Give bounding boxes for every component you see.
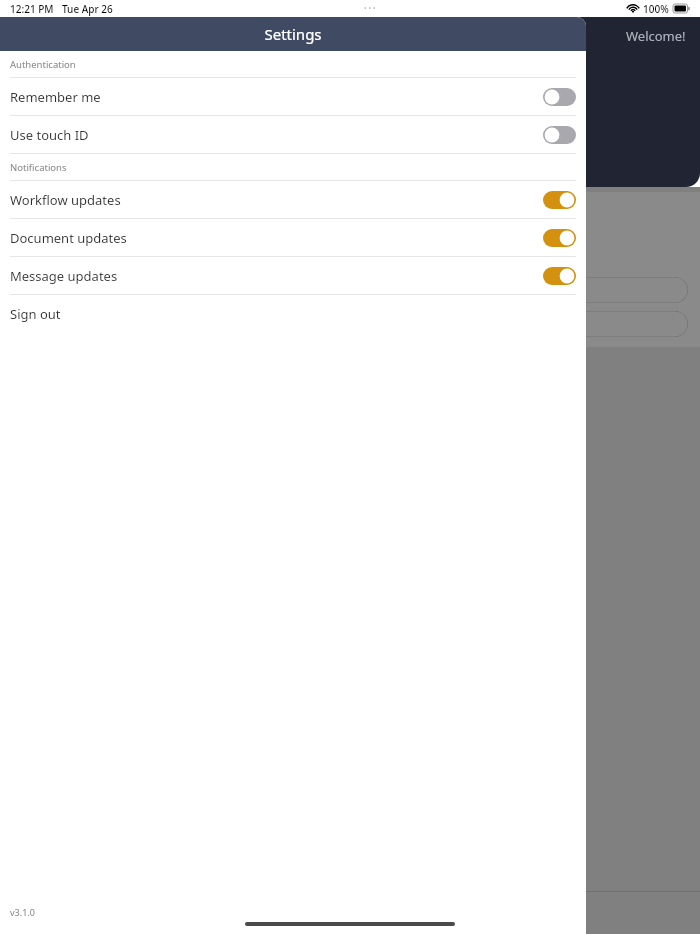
button[interactable]: Remember me bbox=[0, 78, 586, 115]
staticText: Settings bbox=[264, 24, 322, 44]
staticText: Sign out bbox=[10, 305, 61, 323]
staticText: Tue Apr 26 bbox=[62, 2, 113, 16]
staticText: Document updates bbox=[10, 229, 127, 247]
staticText: Workflow updates bbox=[10, 191, 121, 209]
staticText: v3.1.0 bbox=[10, 906, 35, 918]
button[interactable]: Workflow updates bbox=[0, 181, 586, 218]
staticText: • • • bbox=[364, 4, 376, 14]
staticText: Use touch ID bbox=[10, 126, 89, 144]
staticText: Welcome! bbox=[626, 27, 686, 45]
staticText: Message updates bbox=[10, 267, 118, 285]
button[interactable]: Use touch ID bbox=[0, 116, 586, 153]
staticText: Authentication bbox=[10, 58, 76, 71]
button[interactable]: Sign out bbox=[0, 295, 586, 333]
staticText: 12:21 PM bbox=[10, 2, 54, 16]
button[interactable]: Document updates bbox=[0, 219, 586, 256]
staticText: 100% bbox=[643, 2, 669, 16]
staticText: Remember me bbox=[10, 88, 101, 106]
button[interactable]: Message updates bbox=[0, 257, 586, 294]
staticText: Notifications bbox=[10, 161, 67, 174]
